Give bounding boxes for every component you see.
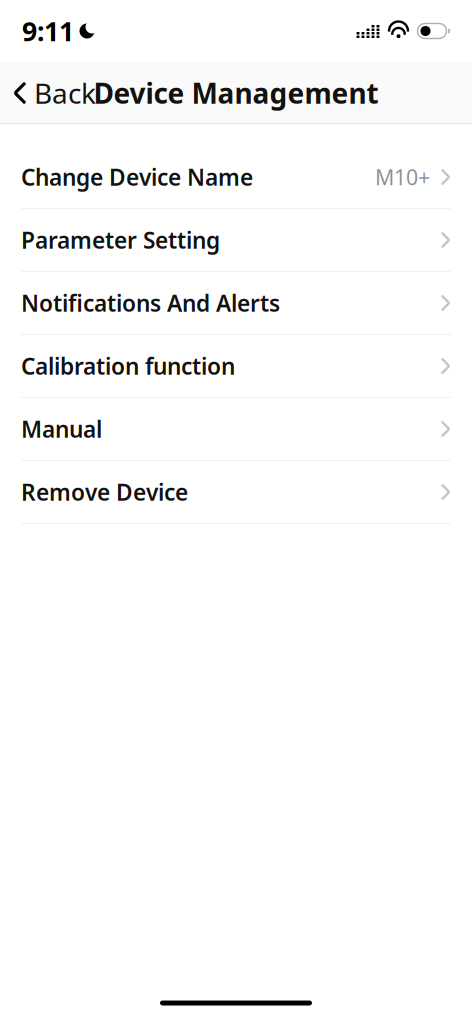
button[interactable]: Back [0, 66, 104, 120]
button[interactable]: Change Device Name [0, 146, 472, 208]
button[interactable]: Remove Device [0, 461, 472, 523]
staticText: Notifications And Alerts [21, 288, 280, 318]
staticText: Remove Device [21, 477, 188, 507]
staticText: Manual [21, 414, 102, 444]
staticText: M10+ [375, 163, 430, 191]
staticText: Parameter Setting [21, 225, 220, 255]
button[interactable]: Parameter Setting [0, 209, 472, 271]
staticText: Device Management [93, 74, 378, 112]
button[interactable]: Notifications And Alerts [0, 272, 472, 334]
staticText: 9:11 [22, 13, 74, 49]
button[interactable]: Calibration function [0, 335, 472, 397]
staticText: Calibration function [21, 351, 235, 381]
staticText: Back [34, 74, 96, 112]
button[interactable]: Manual [0, 398, 472, 460]
staticText: Change Device Name [21, 162, 253, 192]
